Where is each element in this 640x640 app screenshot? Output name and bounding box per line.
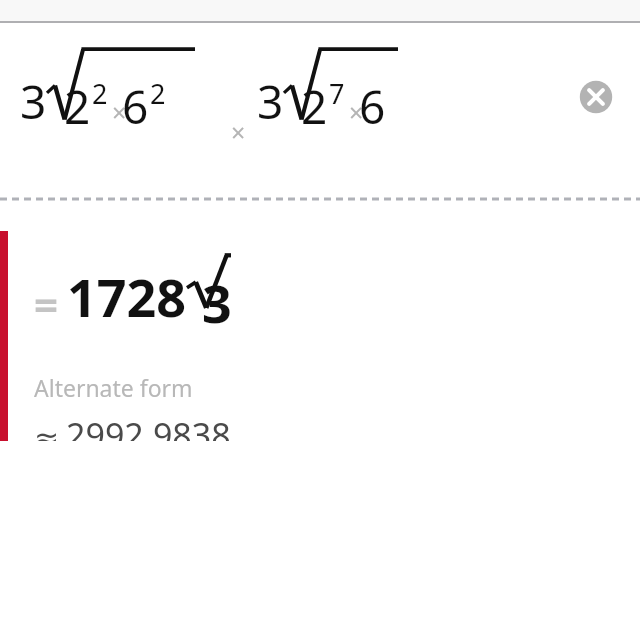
staticText: 2 [301, 75, 328, 138]
staticText: = [34, 275, 59, 332]
staticText: 6 [122, 75, 149, 138]
staticText: 2 [150, 75, 166, 112]
staticText: 3 [257, 70, 284, 133]
staticText: × [112, 95, 127, 129]
staticText: 3 [20, 70, 47, 133]
staticText: × [349, 95, 364, 129]
staticText: 7 [329, 75, 345, 112]
staticText: 2 [64, 75, 91, 138]
staticText: 1728 [67, 261, 186, 332]
staticText: Alternate form [34, 372, 193, 403]
staticText: 6 [359, 75, 386, 138]
staticText: 3 [202, 267, 232, 338]
staticText: 2992,9838 [66, 412, 231, 458]
staticText: 2 [92, 75, 108, 112]
button[interactable]: Close [578, 79, 614, 115]
staticText: × [231, 115, 246, 149]
staticText: ≈ [34, 420, 60, 455]
